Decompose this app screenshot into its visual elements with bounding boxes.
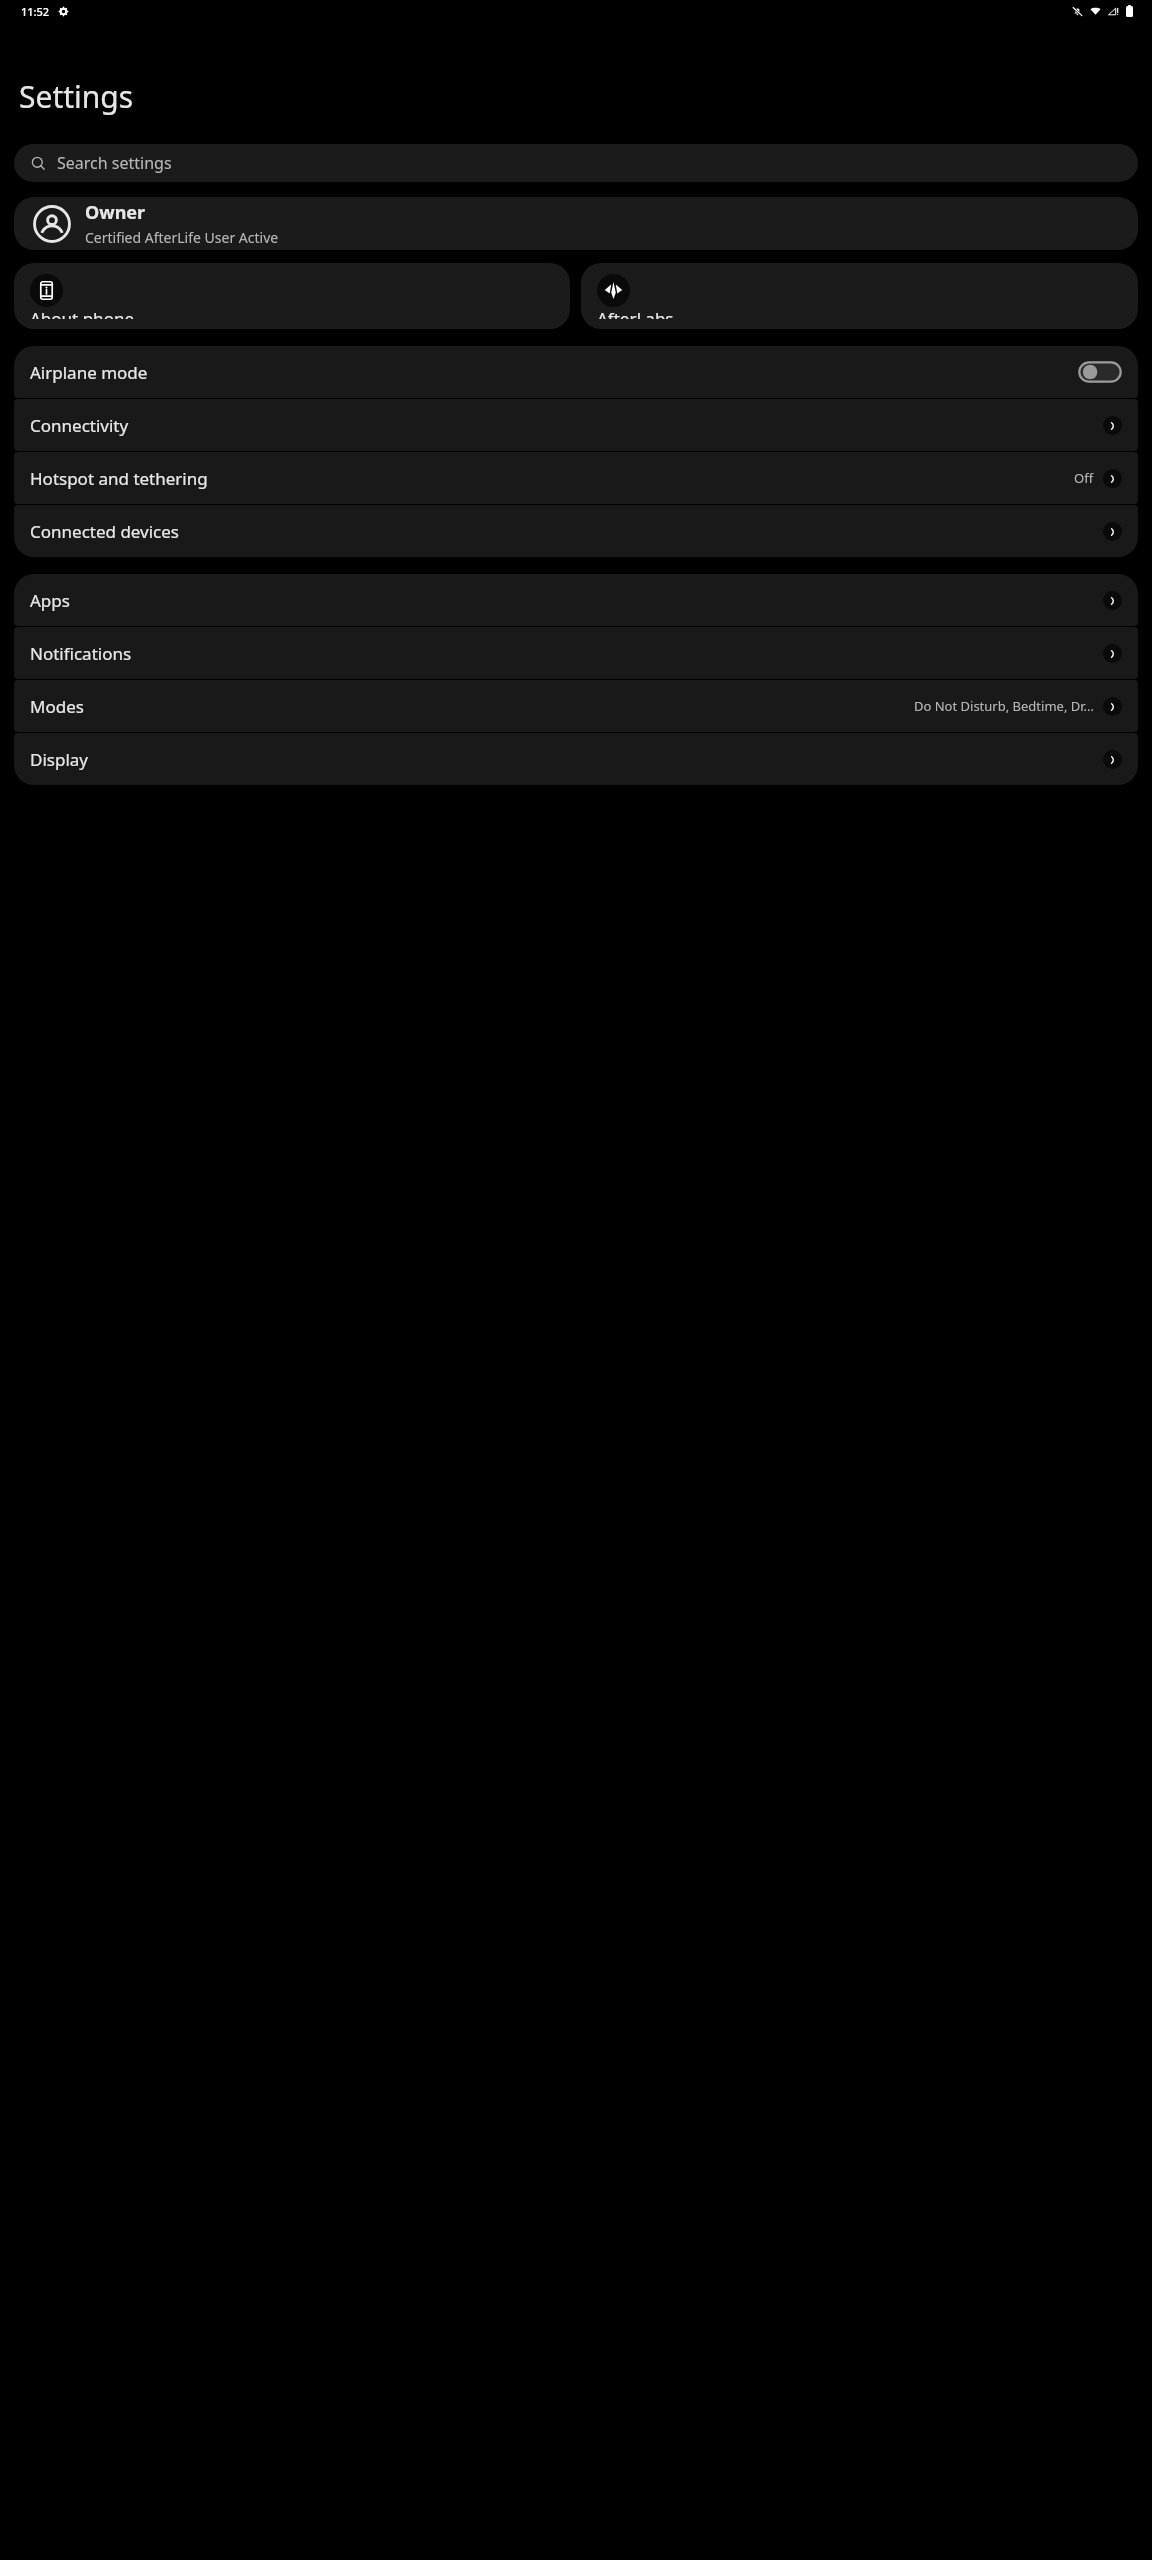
button[interactable]: Airplane mode (14, 346, 1138, 398)
button[interactable]: Open (1103, 697, 1122, 716)
button[interactable]: Open (1103, 469, 1122, 488)
button[interactable]: Search settings (14, 144, 1138, 182)
staticText: Owner (85, 200, 146, 225)
button[interactable]: Apps (14, 574, 1138, 626)
button[interactable]: Open (1103, 522, 1122, 541)
button[interactable]: About phone (14, 263, 570, 329)
button[interactable]: Notifications (14, 627, 1138, 679)
staticText: AfterLabs (597, 307, 674, 319)
staticText: Off (1074, 469, 1094, 487)
staticText: Connected devices (30, 520, 180, 543)
staticText: Notifications (30, 642, 132, 665)
button[interactable]: Hotspot and tethering (14, 452, 1138, 504)
button[interactable]: Display (14, 733, 1138, 785)
button[interactable]: Modes (14, 680, 1138, 732)
button[interactable]: AfterLabs (581, 263, 1138, 329)
button[interactable]: Owner (14, 197, 1138, 250)
staticText: Airplane mode (30, 361, 148, 384)
button[interactable]: Airplane mode toggle (1078, 361, 1122, 383)
staticText: About phone (30, 307, 135, 319)
staticText: Display (30, 748, 88, 771)
staticText: Settings (19, 76, 134, 117)
staticText: Certified AfterLife User Active (85, 228, 279, 247)
button[interactable]: Connectivity (14, 399, 1138, 451)
staticText: Modes (30, 695, 84, 718)
button[interactable]: Open (1103, 416, 1122, 435)
button[interactable]: Open (1103, 750, 1122, 769)
button[interactable]: Open (1103, 644, 1122, 663)
staticText: Apps (30, 589, 70, 612)
staticText: Search settings (57, 152, 172, 174)
staticText: Do Not Disturb, Bedtime, Dr... (914, 697, 1094, 715)
button[interactable]: Open (1103, 591, 1122, 610)
staticText: Hotspot and tethering (30, 467, 208, 490)
staticText: 11:52 (21, 4, 50, 19)
staticText: Connectivity (30, 414, 129, 437)
button[interactable]: Connected devices (14, 505, 1138, 557)
